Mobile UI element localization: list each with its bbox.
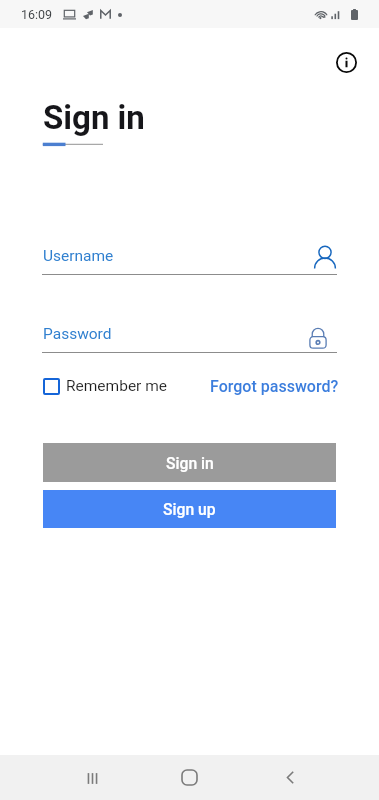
button[interactable]: Home [167,755,212,800]
button[interactable]: Sign in [43,443,336,482]
staticText: 16:09 [21,7,53,22]
button[interactable]: Back [268,755,313,800]
button[interactable]: Information [328,44,364,80]
button[interactable]: Sign up [43,490,336,528]
staticText: Password [43,325,112,343]
button[interactable]: Remember me [43,374,168,398]
staticText: Forgot password? [210,377,339,396]
staticText: Username [43,247,114,265]
button[interactable]: Forgot password? [210,374,339,398]
staticText: Sign up [163,500,216,518]
staticText: Sign in [166,454,214,472]
button[interactable]: Recent apps [70,756,114,800]
staticText: Sign in [43,98,145,137]
staticText: Remember me [66,377,168,395]
